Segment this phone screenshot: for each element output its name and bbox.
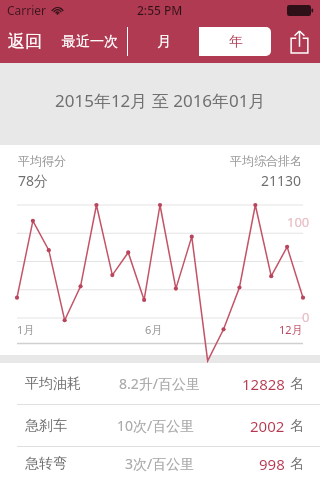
staticText: 2015年12月 至 2016年01月	[55, 89, 266, 112]
button[interactable]: 急转弯	[0, 447, 320, 480]
staticText: 月	[157, 33, 171, 51]
button[interactable]: 急刹车	[0, 405, 320, 446]
button[interactable]: 返回	[4, 27, 46, 56]
staticText: 998	[259, 454, 285, 474]
staticText: 急刹车	[25, 417, 67, 435]
staticText: 平均得分	[18, 153, 66, 168]
staticText: 10次/百公里	[117, 416, 195, 435]
staticText: 8.2升/百公里	[119, 374, 200, 393]
staticText: 100	[287, 213, 310, 231]
staticText: 名	[290, 455, 304, 473]
staticText: 6月	[145, 322, 163, 337]
staticText: 急转弯	[25, 455, 67, 473]
staticText: 最近一次	[62, 33, 118, 51]
button[interactable]: 分享	[285, 25, 314, 59]
staticText: 名	[290, 375, 304, 393]
staticText: 1月	[17, 322, 35, 337]
staticText: 0	[302, 308, 310, 326]
staticText: Carrier	[7, 2, 47, 18]
staticText: 平均综合排名	[230, 153, 302, 168]
staticText: 12月	[279, 322, 303, 337]
staticText: 年	[229, 33, 243, 51]
staticText: 21130	[261, 171, 302, 190]
staticText: 78分	[18, 171, 49, 190]
button[interactable]: 年	[200, 27, 271, 56]
staticText: 平均油耗	[25, 375, 81, 393]
button[interactable]: 平均油耗	[0, 363, 320, 404]
staticText: 2002	[250, 416, 285, 436]
staticText: 返回	[8, 31, 42, 52]
staticText: 名	[290, 417, 304, 435]
button[interactable]: 月	[128, 27, 199, 56]
staticText: 3次/百公里	[125, 454, 195, 473]
staticText: 2:55 PM	[137, 2, 183, 18]
staticText: 12828	[242, 374, 285, 394]
button[interactable]: 最近一次	[53, 27, 127, 56]
